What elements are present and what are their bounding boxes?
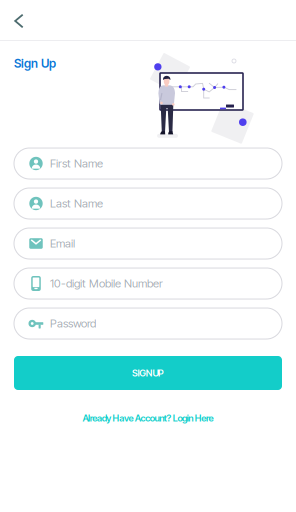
staticText: First Name xyxy=(50,157,103,170)
staticText: Email xyxy=(50,237,75,250)
staticText: Sign Up xyxy=(14,56,56,70)
button[interactable]: Password xyxy=(14,308,282,339)
button[interactable]: SIGNUP xyxy=(14,356,282,390)
button[interactable]: Last Name xyxy=(14,188,282,219)
button[interactable]: Back xyxy=(0,0,38,42)
button[interactable]: Email xyxy=(14,228,282,259)
button[interactable]: First Name xyxy=(14,148,282,179)
staticText: Password xyxy=(50,317,96,330)
staticText: Last Name xyxy=(50,197,103,210)
staticText: SIGNUP xyxy=(132,367,164,379)
staticText: Already Have Account? Login Here xyxy=(82,412,214,424)
button[interactable]: Already Have Account? Login Here xyxy=(48,410,248,426)
staticText: 10-digit Mobile Number xyxy=(50,277,163,290)
button[interactable]: 10-digit Mobile Number xyxy=(14,268,282,299)
